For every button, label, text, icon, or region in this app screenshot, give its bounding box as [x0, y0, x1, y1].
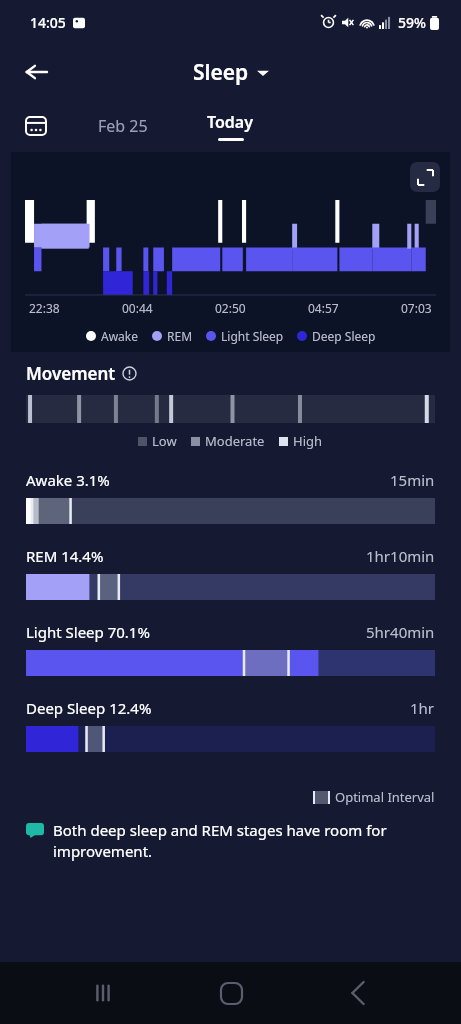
- button[interactable]: Back: [334, 969, 382, 1017]
- button[interactable]: Awake 3.1%: [26, 470, 435, 546]
- button[interactable]: Feb 25: [98, 115, 148, 137]
- button[interactable]: Home: [207, 969, 255, 1017]
- staticText: Awake 3.1%: [26, 470, 110, 490]
- staticText: 1hr: [410, 698, 435, 718]
- staticText: REM 14.4%: [26, 546, 104, 566]
- staticText: 5hr40min: [366, 622, 435, 642]
- button[interactable]: Expand chart: [410, 162, 440, 192]
- staticText: Optimal Interval: [335, 788, 435, 806]
- staticText: Both deep sleep and REM stages have room…: [53, 820, 431, 862]
- staticText: 22:38: [29, 300, 60, 316]
- staticText: Deep Sleep: [312, 328, 376, 344]
- button[interactable]: Both deep sleep and REM stages have room…: [26, 820, 431, 862]
- staticText: 15min: [390, 470, 435, 490]
- staticText: High: [293, 432, 323, 450]
- staticText: Light Sleep: [221, 328, 284, 344]
- staticText: 07:03: [401, 300, 432, 316]
- staticText: Light Sleep 70.1%: [26, 622, 150, 642]
- staticText: Low: [152, 432, 177, 450]
- staticText: Today: [207, 111, 254, 133]
- staticText: 04:57: [308, 300, 339, 316]
- staticText: 14:05: [30, 13, 66, 32]
- staticText: Moderate: [205, 432, 265, 450]
- staticText: 00:44: [122, 300, 153, 316]
- button[interactable]: Sleep: [193, 58, 269, 87]
- staticText: 1hr10min: [366, 546, 435, 566]
- staticText: Deep Sleep 12.4%: [26, 698, 152, 718]
- button[interactable]: Back: [14, 50, 58, 94]
- staticText: 02:50: [215, 300, 246, 316]
- staticText: 59%: [398, 13, 426, 32]
- button[interactable]: REM 14.4%: [26, 546, 435, 622]
- staticText: Sleep: [193, 58, 249, 87]
- staticText: REM: [167, 328, 193, 344]
- staticText: Movement: [26, 362, 116, 385]
- button[interactable]: Today: [207, 111, 254, 141]
- button[interactable]: Deep Sleep 12.4%: [26, 698, 435, 774]
- button[interactable]: Light Sleep 70.1%: [26, 622, 435, 698]
- staticText: Awake: [101, 328, 139, 344]
- button[interactable]: Calendar: [16, 106, 56, 146]
- button[interactable]: Recents: [79, 969, 127, 1017]
- button[interactable]: Movement: [26, 362, 137, 385]
